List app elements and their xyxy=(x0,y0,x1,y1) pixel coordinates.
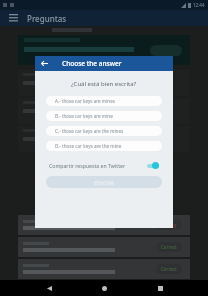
button[interactable]: Compartir respuesta en Twitter xyxy=(49,160,159,171)
staticText: Preguntas xyxy=(27,13,67,24)
staticText: Compartir respuesta en Twitter xyxy=(49,162,126,169)
staticText: A.- those car keys are mines xyxy=(55,98,115,104)
button[interactable]: Back xyxy=(38,57,51,70)
staticText: D.- those car keys are the mine xyxy=(55,143,122,149)
staticText: 12:44 xyxy=(193,2,205,8)
button[interactable]: D.- those car keys are the mine xyxy=(46,141,162,151)
button[interactable]: ENVIAR xyxy=(46,176,162,188)
button[interactable]: Open navigation menu xyxy=(6,11,20,25)
button[interactable]: C.- those car keys are the mines xyxy=(46,126,162,136)
staticText: Wrong xyxy=(162,222,177,228)
button[interactable]: Home xyxy=(97,281,111,295)
button[interactable]: Recent apps xyxy=(153,281,167,295)
button[interactable]: Wrong xyxy=(18,215,190,235)
button[interactable]: A.- those car keys are mines xyxy=(46,96,162,106)
staticText: ¿Cuál está bien escrita? xyxy=(71,80,137,88)
button[interactable]: Correct xyxy=(18,259,190,279)
staticText: ENVIAR xyxy=(94,179,114,186)
staticText: B.- those car keys are mine xyxy=(55,113,113,119)
staticText: C.- those car keys are the mines xyxy=(55,128,124,134)
staticText: Choose the answer xyxy=(62,59,122,68)
button[interactable]: Back xyxy=(42,281,56,295)
button[interactable]: Correct xyxy=(18,237,190,257)
staticText: Correct xyxy=(161,266,177,272)
button[interactable]: B.- those car keys are mine xyxy=(46,111,162,121)
staticText: Correct xyxy=(161,244,177,250)
